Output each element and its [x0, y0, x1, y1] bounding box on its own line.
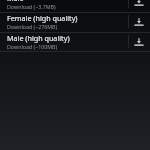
staticText: Download (~3.7MB) — [7, 3, 56, 10]
button[interactable]: Download Male — [128, 0, 150, 11]
button[interactable]: Female (high quality) — [0, 12, 150, 31]
staticText: Male — [7, 0, 24, 3]
staticText: Download (~100MB) — [7, 43, 58, 50]
button[interactable]: Download Female (high quality) — [128, 12, 150, 31]
button[interactable]: Male (high quality) — [0, 32, 150, 51]
button[interactable]: Male — [0, 0, 150, 11]
staticText: Download (~276MB) — [7, 23, 58, 30]
staticText: Female (high quality) — [7, 13, 78, 23]
button[interactable]: Download Male (high quality) — [128, 32, 150, 51]
staticText: Male (high quality) — [7, 33, 70, 43]
